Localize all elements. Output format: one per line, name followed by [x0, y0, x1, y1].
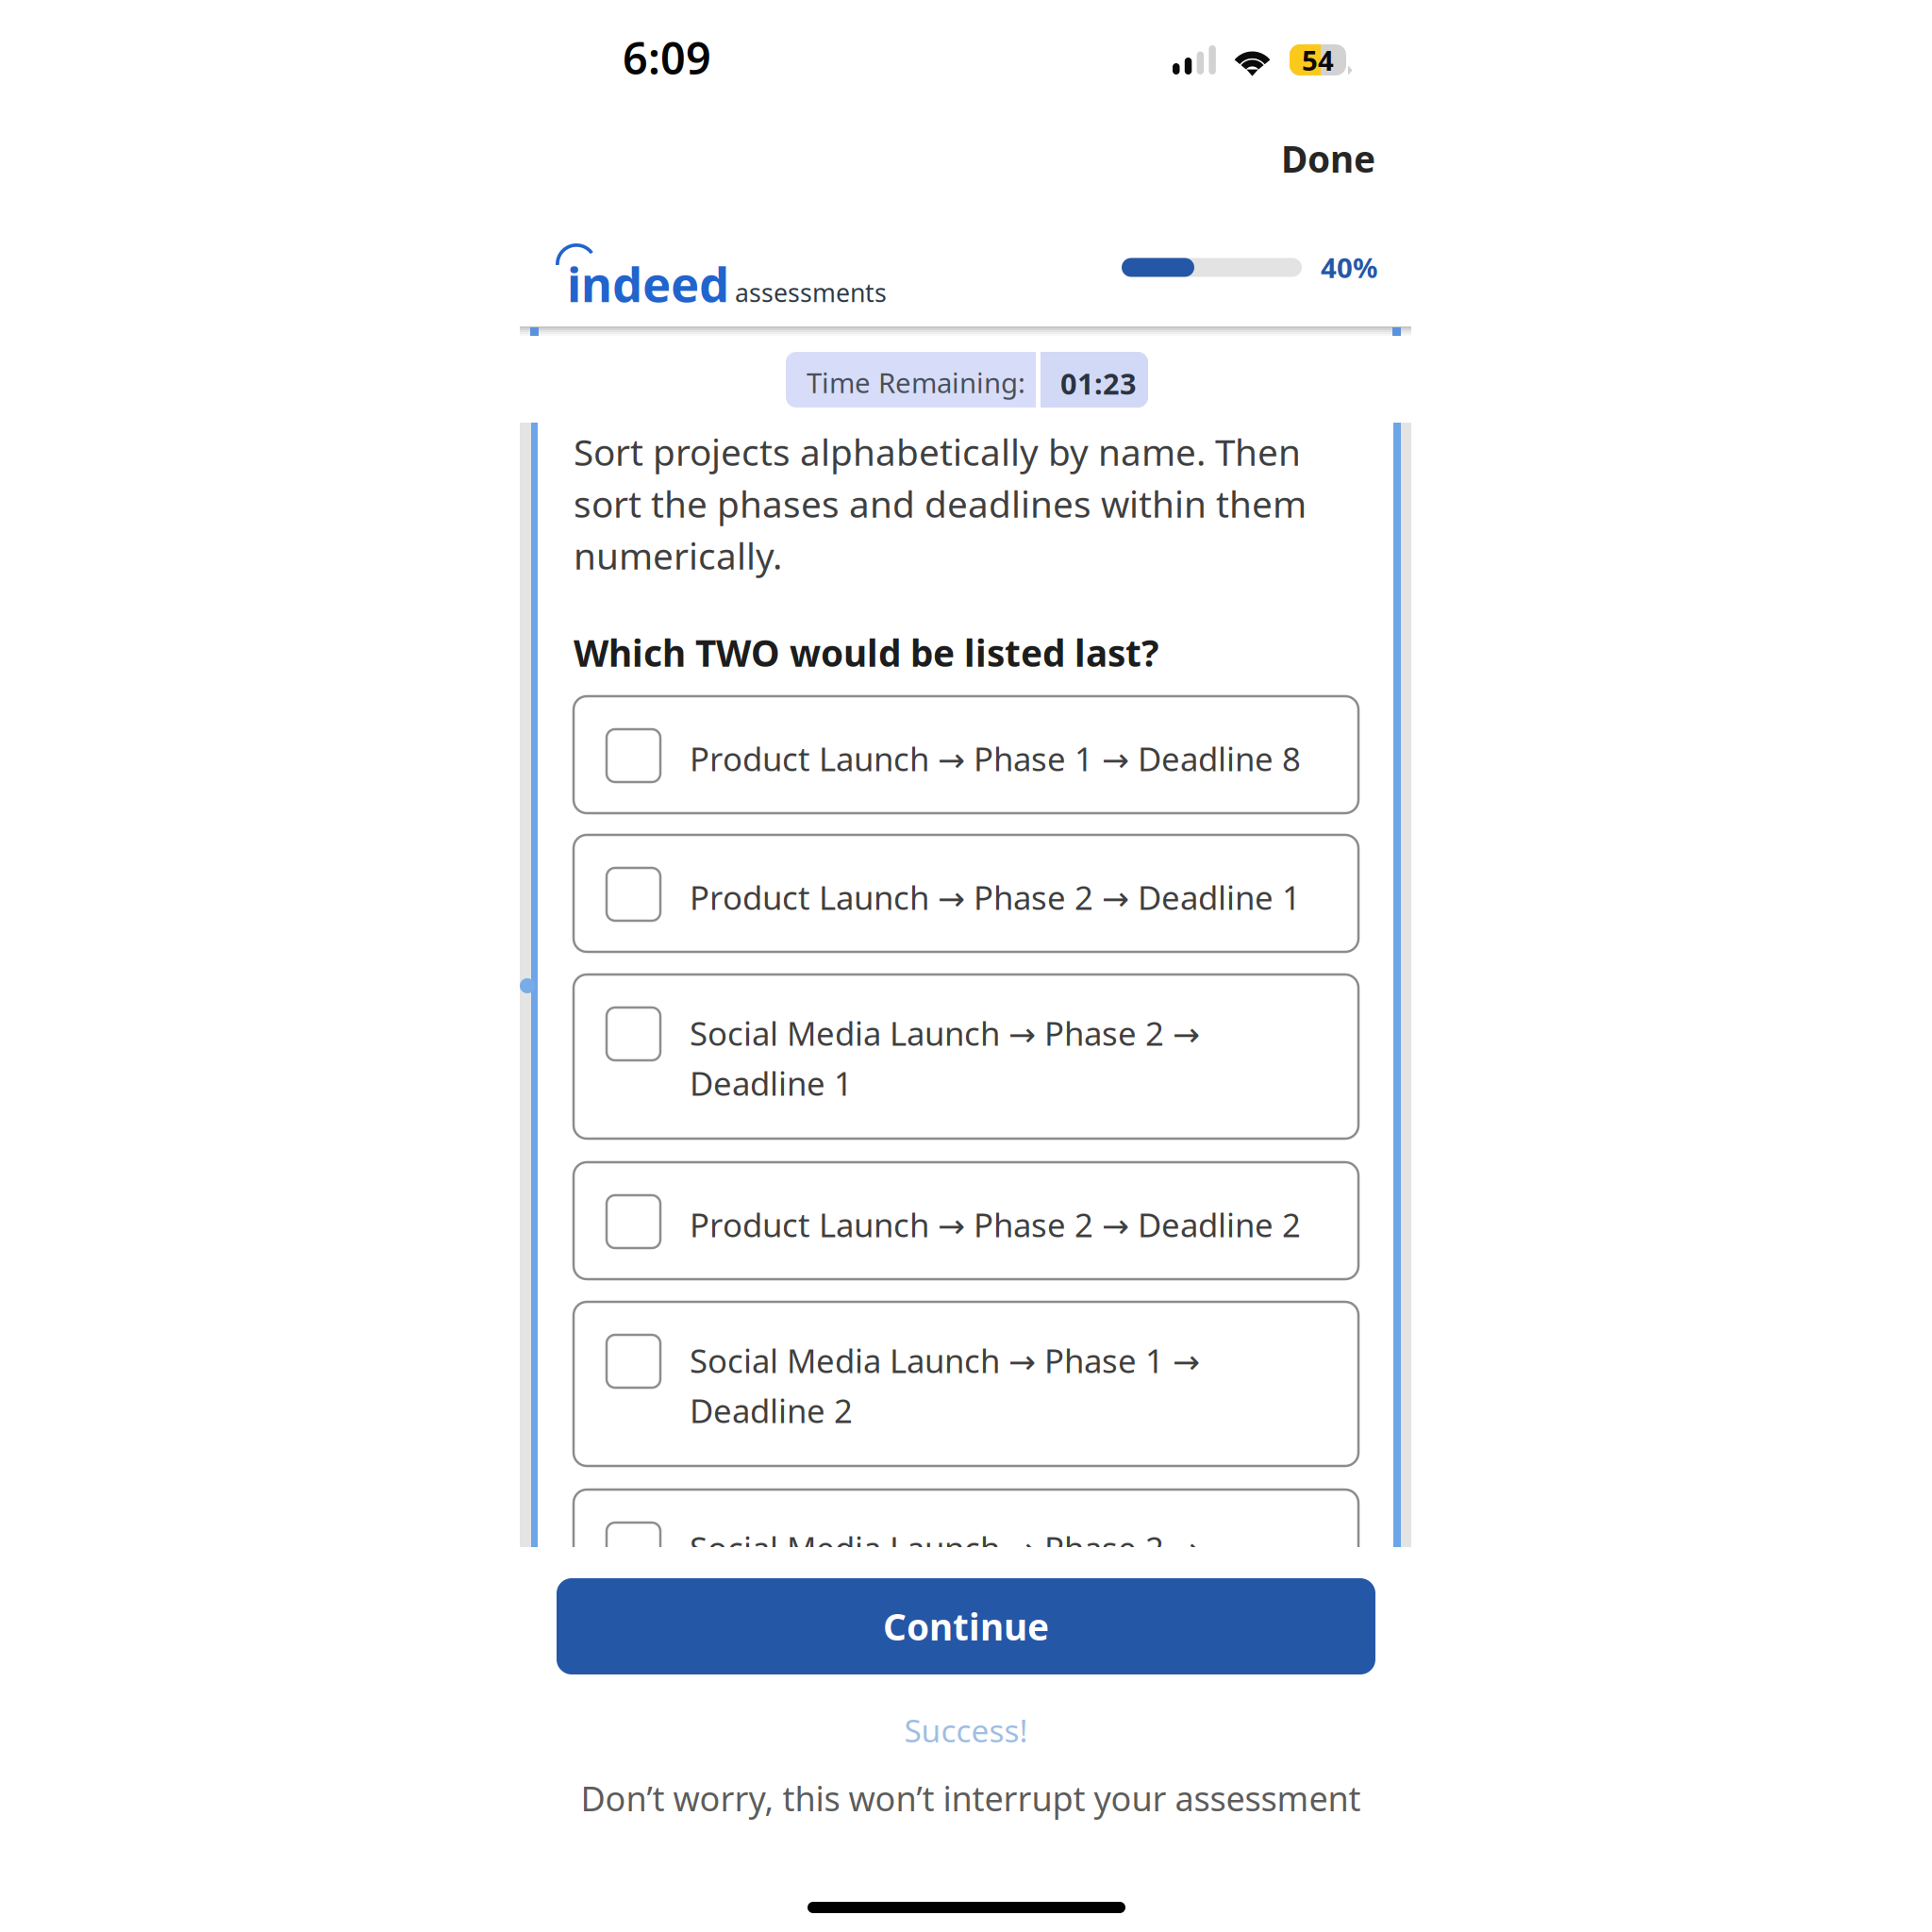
staticText: Done [1281, 134, 1375, 183]
button[interactable]: Social Media Launch → Phase 1 → [574, 1302, 1358, 1466]
staticText: Product Launch → Phase 1 → Deadline 8 [690, 737, 1301, 780]
staticText: Time Remaining: [807, 364, 1025, 401]
staticText: 01:23 [1060, 364, 1137, 403]
staticText: Social Media Launch → Phase 2 → [690, 1011, 1200, 1055]
button[interactable]: Product Launch → Phase 1 → Deadline 8 [574, 696, 1358, 813]
staticText: indeed [567, 252, 729, 315]
staticText: Sort projects alphabetically by name. Th… [574, 427, 1301, 476]
staticText: Deadline 2 [690, 1389, 853, 1432]
staticText: 40% [1321, 249, 1377, 286]
staticText: numerically. [574, 531, 782, 580]
staticText: Deadline 1 [690, 1061, 853, 1105]
staticText: Success! [904, 1709, 1028, 1751]
staticText: assessments [735, 276, 887, 309]
button[interactable]: Social Media Launch → Phase 2 → [574, 1490, 1358, 1654]
button[interactable]: Continue [557, 1578, 1375, 1674]
staticText: Which TWO would be listed last? [574, 628, 1158, 677]
staticText: Product Launch → Phase 2 → Deadline 2 [690, 1203, 1301, 1246]
staticText: Don’t worry, this won’t interrupt your a… [581, 1775, 1361, 1821]
button[interactable]: Done [1262, 127, 1394, 190]
staticText: Deadline 3 [690, 1576, 853, 1620]
staticText: 6:09 [623, 28, 711, 87]
button[interactable]: Product Launch → Phase 2 → Deadline 1 [574, 835, 1358, 952]
staticText: Social Media Launch → Phase 1 → [690, 1339, 1200, 1382]
staticText: Social Media Launch → Phase 2 → [690, 1526, 1200, 1570]
staticText: Product Launch → Phase 2 → Deadline 1 [690, 875, 1301, 919]
button[interactable]: Social Media Launch → Phase 2 → [574, 974, 1358, 1139]
staticText: 54 [1302, 42, 1334, 78]
staticText: Continue [883, 1602, 1049, 1651]
staticText: sort the phases and deadlines within the… [574, 479, 1307, 528]
button[interactable]: Product Launch → Phase 2 → Deadline 2 [574, 1162, 1358, 1279]
